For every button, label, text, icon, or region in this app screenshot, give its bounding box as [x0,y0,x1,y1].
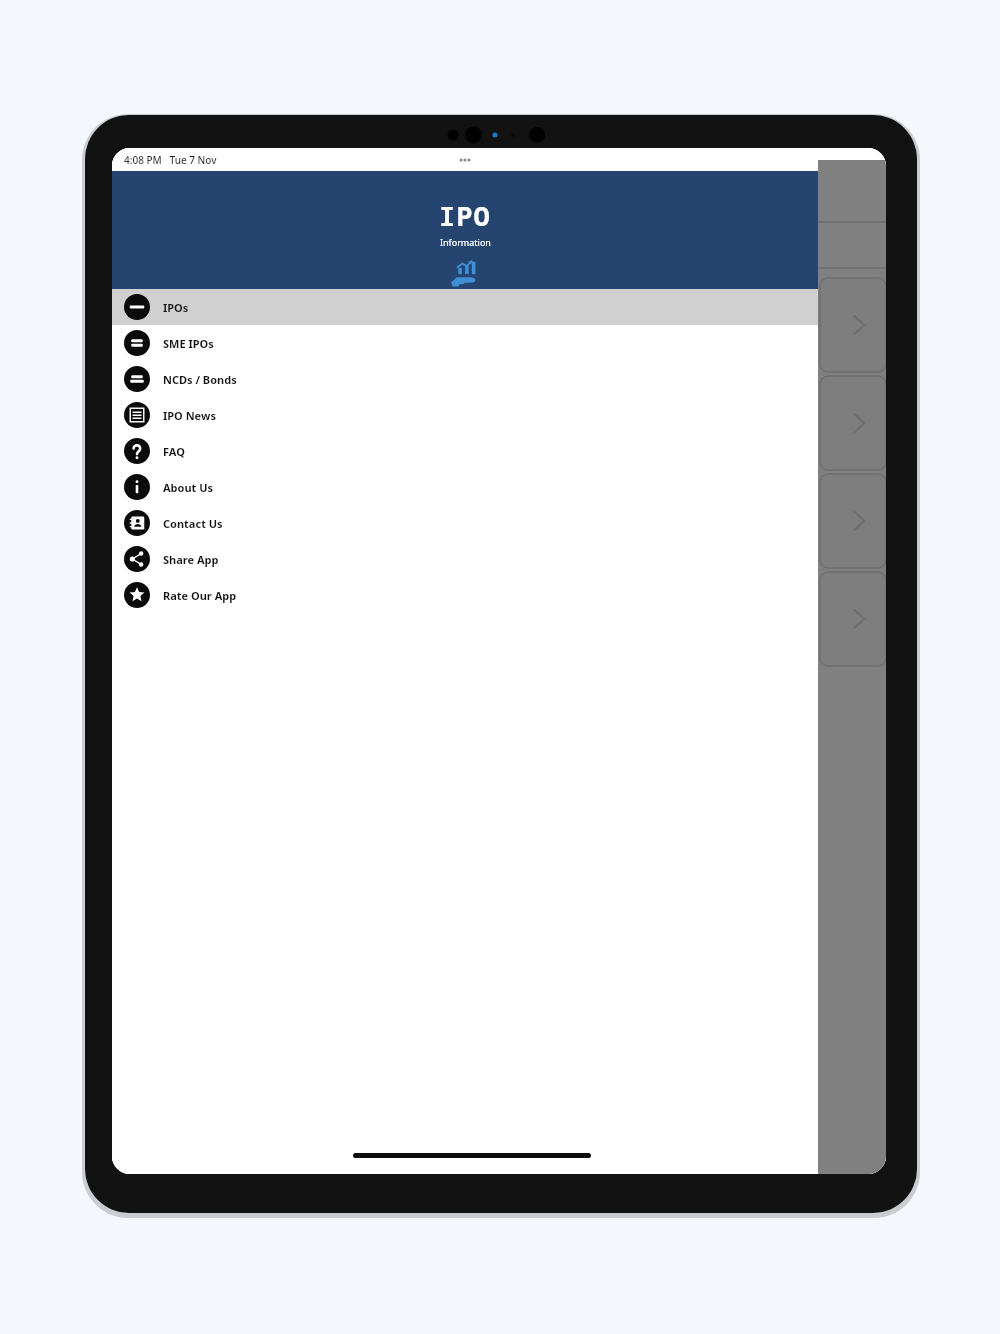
staticText: IPO [439,197,491,234]
button[interactable]: SME IPOs [112,325,818,361]
staticText: Share App [163,552,219,567]
staticText: IPO News [163,408,216,423]
button[interactable]: IPOs [112,289,818,325]
button[interactable]: IPO News [112,397,818,433]
staticText: IPOs [163,300,189,315]
button[interactable]: About Us [112,469,818,505]
staticText: 4:08 PM Tue 7 Nov [124,153,217,167]
staticText: NCDs / Bonds [163,372,237,387]
button[interactable]: FAQ [112,433,818,469]
staticText: FAQ [163,444,185,459]
button[interactable]: Contact Us [112,505,818,541]
staticText: About Us [163,480,214,495]
button[interactable]: Share App [112,541,818,577]
staticText: Contact Us [163,516,223,531]
button[interactable]: NCDs / Bonds [112,361,818,397]
staticText: Rate Our App [163,588,237,603]
staticText: SME IPOs [163,336,214,351]
staticText: Information [440,236,491,248]
button[interactable]: Rate Our App [112,577,818,613]
